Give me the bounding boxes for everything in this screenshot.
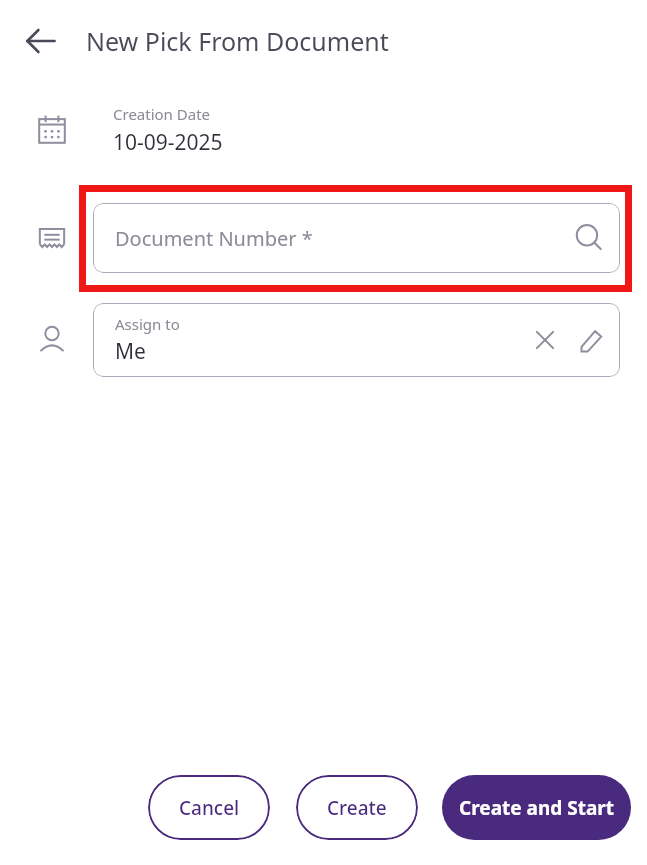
staticText: Cancel xyxy=(179,795,240,821)
staticText: Document Number * xyxy=(115,225,313,252)
staticText: Create and Start xyxy=(459,795,615,821)
staticText: Create xyxy=(327,795,387,821)
button[interactable]: Assign to xyxy=(93,303,620,377)
button[interactable]: Create xyxy=(296,775,418,840)
staticText: Me xyxy=(115,337,146,366)
button[interactable]: Create and Start xyxy=(442,775,631,840)
button[interactable]: Cancel xyxy=(148,775,270,840)
button[interactable]: Edit xyxy=(574,323,608,357)
button[interactable]: Back xyxy=(21,21,61,61)
button[interactable]: Search xyxy=(572,221,606,255)
staticText: Assign to xyxy=(115,314,180,334)
staticText: 10-09-2025 xyxy=(113,128,223,157)
staticText: Creation Date xyxy=(113,104,211,124)
button[interactable]: Clear xyxy=(528,323,562,357)
staticText: New Pick From Document xyxy=(86,24,389,58)
button[interactable]: Document Number * xyxy=(93,203,620,273)
